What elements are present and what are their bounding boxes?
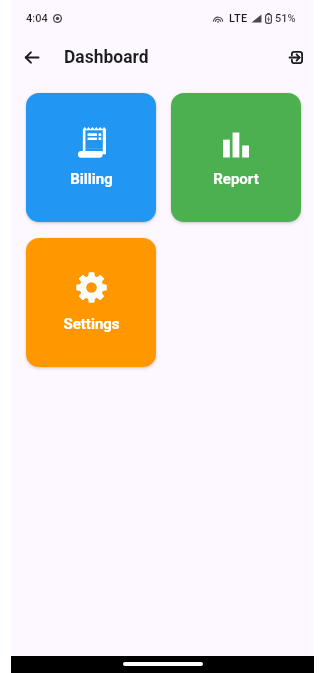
staticText: Billing [70, 170, 113, 188]
staticText: 4:04 [26, 12, 48, 25]
staticText: 51% [275, 12, 296, 25]
staticText: Dashboard [64, 47, 149, 68]
button[interactable]: Settings [26, 238, 156, 367]
button[interactable]: Report [171, 93, 301, 222]
button[interactable]: Billing [26, 93, 156, 222]
button[interactable]: Logout [279, 40, 313, 74]
button[interactable]: Back [14, 39, 50, 75]
staticText: LTE [229, 12, 248, 25]
staticText: Settings [63, 315, 120, 333]
staticText: Report [213, 170, 259, 188]
